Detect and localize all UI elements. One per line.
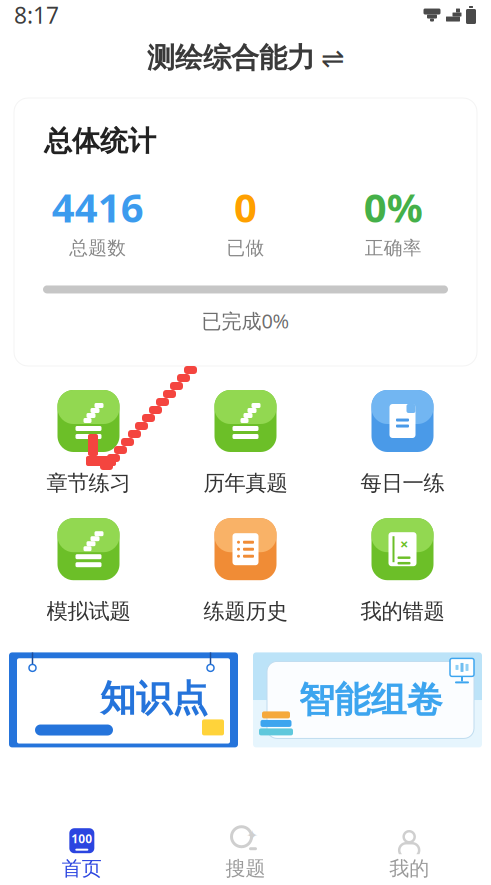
staticText: 知识点 [100, 676, 208, 720]
staticText: 总体统计 [44, 124, 156, 158]
staticText: ⇌ [321, 42, 344, 74]
staticText: 8:17 [14, 0, 59, 30]
button[interactable]: 切换科目 [321, 42, 344, 74]
staticText: 我的 [389, 856, 429, 881]
staticText: 已做 [226, 236, 264, 259]
button[interactable]: 每日一练 [324, 390, 481, 496]
button[interactable]: 我的 [327, 821, 491, 885]
staticText: 我的错题 [360, 598, 444, 624]
staticText: 总题数 [69, 236, 126, 259]
staticText: 首页 [62, 856, 102, 881]
staticText: 智能组卷 [298, 678, 442, 722]
staticText: 4416 [52, 180, 144, 233]
staticText: ✦ [246, 827, 258, 844]
staticText: 已完成0% [201, 307, 289, 334]
staticText: 搜题 [225, 856, 265, 881]
staticText: 正确率 [365, 236, 422, 259]
button[interactable]: ✦ [164, 821, 327, 885]
button[interactable]: 模拟试题 [10, 518, 167, 624]
button[interactable]: 章节练习 [10, 390, 167, 496]
staticText: 100 [71, 831, 92, 847]
button[interactable]: 历年真题 [167, 390, 324, 496]
staticText: 历年真题 [203, 470, 287, 496]
button[interactable]: 智能组卷 [253, 652, 482, 747]
staticText: 模拟试题 [46, 598, 130, 624]
button[interactable]: 知识点 [9, 652, 238, 747]
button[interactable]: × [324, 518, 481, 624]
button[interactable]: 100 [0, 821, 164, 885]
staticText: 每日一练 [360, 470, 444, 496]
staticText: × [400, 534, 408, 553]
staticText: 章节练习 [46, 470, 130, 496]
staticText: 练题历史 [203, 598, 287, 624]
button[interactable]: 练题历史 [167, 518, 324, 624]
staticText: 0% [364, 180, 423, 233]
staticText: 0 [234, 180, 257, 233]
staticText: 测绘综合能力 [147, 41, 315, 75]
